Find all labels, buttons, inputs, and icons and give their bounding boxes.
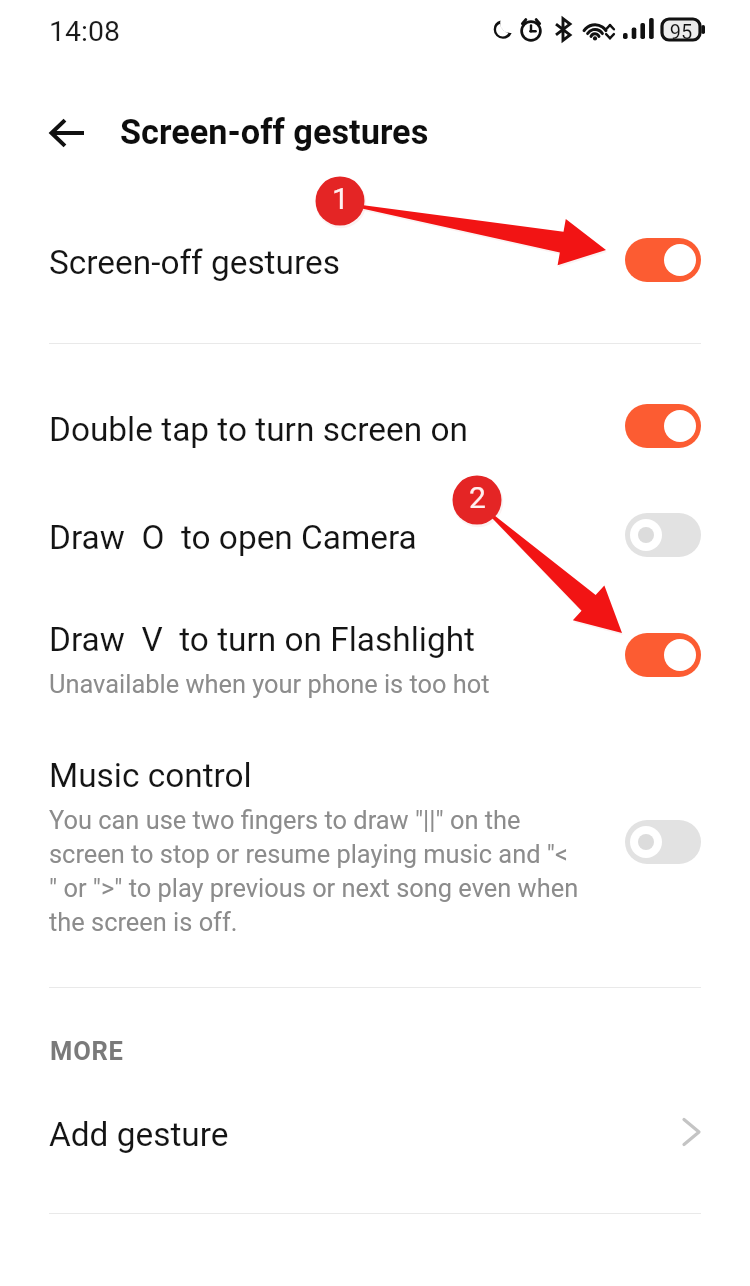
- staticText: You can use two fingers to draw "||" on …: [49, 805, 579, 937]
- staticText: Add gesture: [49, 1115, 229, 1154]
- staticText: 1: [325, 181, 356, 216]
- button[interactable]: Music control: [0, 740, 750, 955]
- button[interactable]: Double tap to turn screen on: [0, 386, 750, 474]
- staticText: 2: [462, 480, 493, 515]
- staticText: MORE: [50, 1036, 124, 1066]
- staticText: Double tap to turn screen on: [49, 410, 468, 449]
- button[interactable]: Switch, on: [625, 238, 701, 282]
- staticText: Music control: [49, 756, 252, 795]
- staticText: Draw V to turn on Flashlight: [49, 620, 475, 659]
- staticText: Unavailable when your phone is too hot: [49, 669, 490, 699]
- staticText: 95: [662, 20, 700, 43]
- button[interactable]: Switch, on: [625, 633, 701, 677]
- button[interactable]: Screen-off gestures: [0, 213, 750, 305]
- button[interactable]: Switch, on: [625, 404, 701, 448]
- button[interactable]: Draw O to open Camera: [0, 495, 750, 583]
- staticText: Draw O to open Camera: [49, 518, 417, 557]
- button[interactable]: Switch, off: [625, 820, 701, 864]
- button[interactable]: Add gesture: [0, 1088, 750, 1180]
- staticText: Screen-off gestures: [120, 112, 429, 152]
- staticText: Screen-off gestures: [49, 243, 340, 282]
- button[interactable]: Switch, off: [625, 513, 701, 557]
- button[interactable]: Draw V to turn on Flashlight: [0, 598, 750, 710]
- button[interactable]: Navigate back: [41, 108, 93, 160]
- staticText: 14:08: [49, 15, 120, 48]
